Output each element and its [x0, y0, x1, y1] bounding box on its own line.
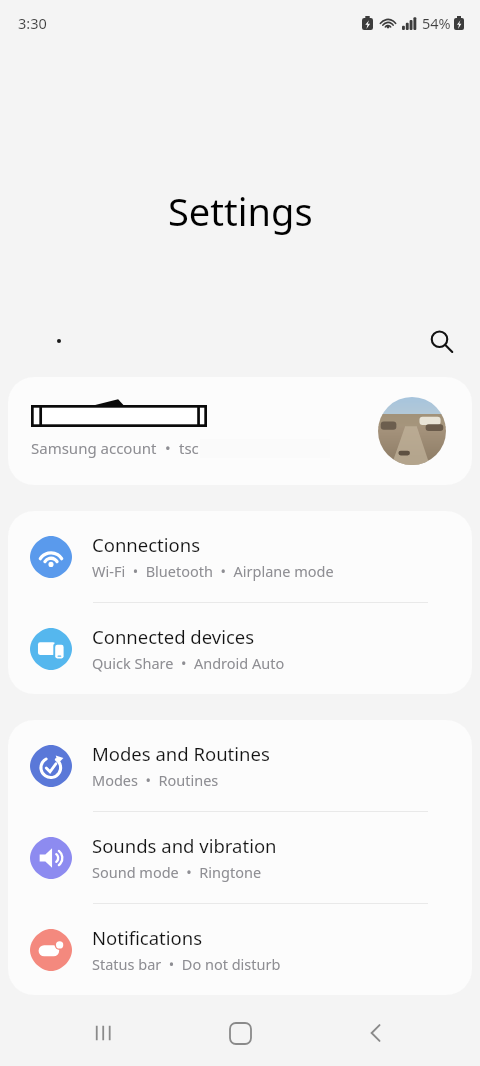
staticText: Wi-Fi • Bluetooth • Airplane mode: [92, 561, 334, 581]
staticText: Notifications: [92, 925, 203, 950]
button[interactable]: Modes and Routines: [8, 720, 472, 811]
staticText: Sounds and vibration: [92, 833, 277, 858]
staticText: Connected devices: [92, 624, 255, 649]
button[interactable]: Samsung account: [8, 377, 472, 485]
button[interactable]: Notifications: [8, 904, 472, 995]
button[interactable]: Back: [344, 1001, 408, 1065]
staticText: 3:30: [18, 13, 47, 33]
button[interactable]: Home: [208, 1001, 272, 1065]
button[interactable]: Connected devices: [8, 603, 472, 694]
button[interactable]: Sounds and vibration: [8, 812, 472, 903]
button[interactable]: Recent apps: [72, 1001, 136, 1065]
staticText: Sound mode • Ringtone: [92, 862, 262, 882]
staticText: Modes • Routines: [92, 770, 219, 790]
staticText: Modes and Routines: [92, 741, 270, 766]
staticText: Status bar • Do not disturb: [92, 954, 281, 974]
staticText: Quick Share • Android Auto: [92, 653, 285, 673]
staticText: Connections: [92, 532, 201, 557]
staticText: 54%: [422, 13, 451, 33]
staticText: Samsung account: [31, 438, 157, 458]
staticText: Settings: [168, 185, 313, 237]
staticText: •: [165, 438, 171, 458]
button[interactable]: Connections: [8, 511, 472, 602]
staticText: tsc: [179, 438, 199, 458]
button[interactable]: Search: [423, 325, 459, 357]
